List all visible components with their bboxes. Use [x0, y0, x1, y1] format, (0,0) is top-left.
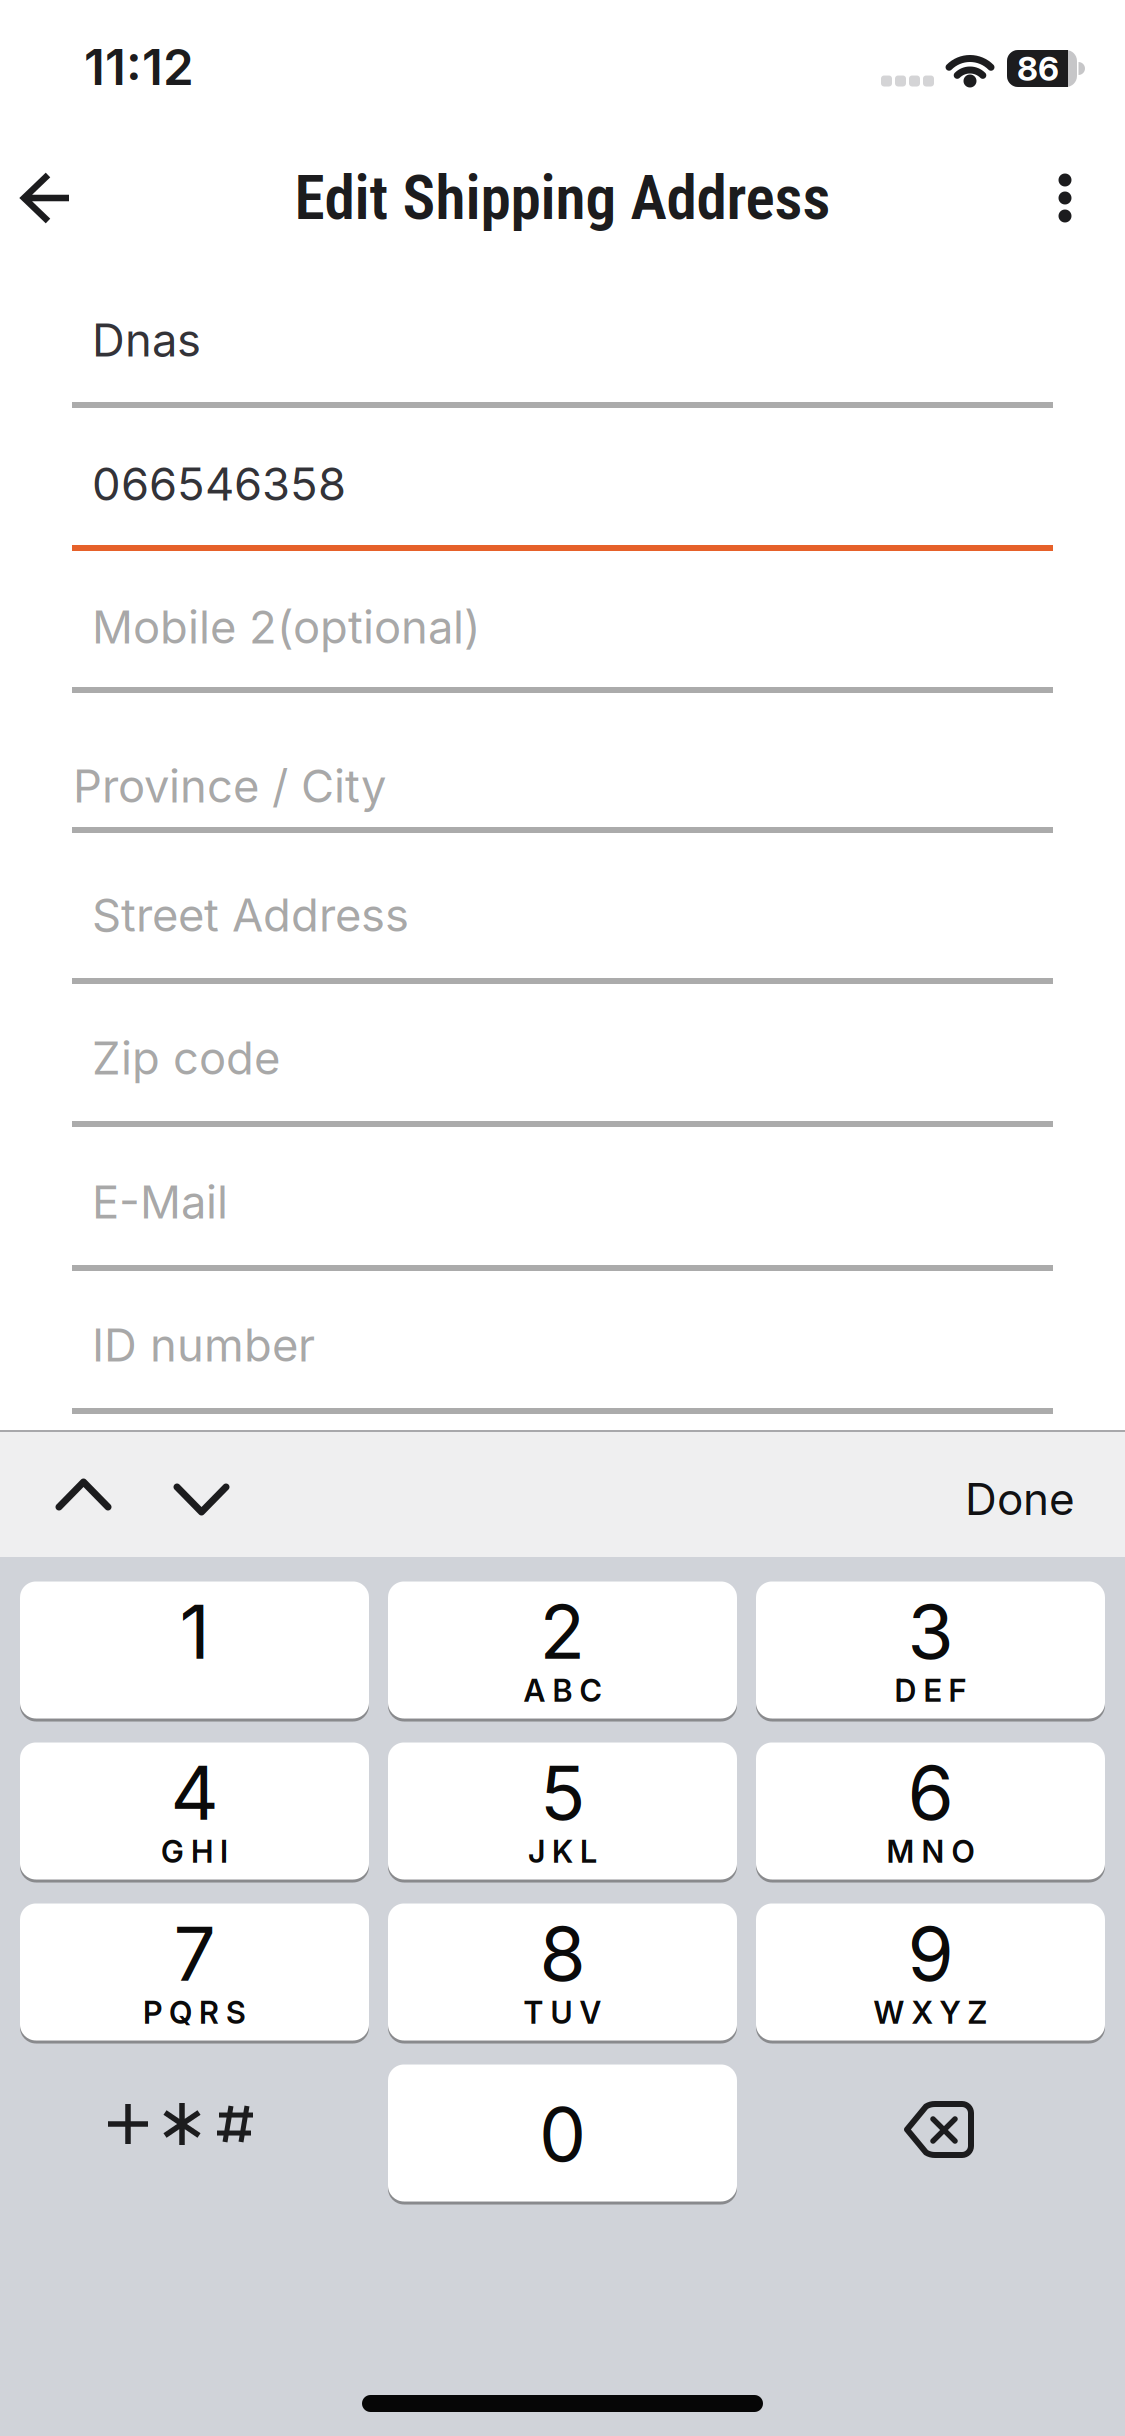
- button[interactable]: Back: [0, 143, 101, 253]
- staticText: ID number: [92, 1318, 315, 1372]
- staticText: ABC: [523, 1672, 601, 1709]
- button[interactable]: Delete: [756, 2063, 1105, 2200]
- button[interactable]: 2: [388, 1580, 737, 1720]
- staticText: MNO: [886, 1833, 974, 1870]
- button[interactable]: More options: [1010, 143, 1120, 253]
- staticText: Street Address: [92, 888, 409, 942]
- button[interactable]: Province / City: [72, 731, 1053, 841]
- staticText: 3: [907, 1586, 953, 1677]
- staticText: 1: [179, 1586, 209, 1677]
- button[interactable]: 3: [756, 1580, 1105, 1720]
- staticText: Edit Shipping Address: [294, 162, 830, 234]
- button[interactable]: Done: [775, 1449, 1075, 1549]
- staticText: WXYZ: [873, 1994, 987, 2031]
- staticText: 4: [170, 1747, 218, 1838]
- button[interactable]: 1: [20, 1580, 369, 1720]
- staticText: JKL: [528, 1833, 597, 1870]
- staticText: Done: [965, 1472, 1075, 1526]
- button[interactable]: 066546358: [72, 429, 1053, 551]
- staticText: 11:12: [84, 37, 194, 97]
- staticText: GHI: [161, 1833, 228, 1870]
- button[interactable]: Next field: [155, 1461, 248, 1541]
- staticText: 8: [539, 1908, 585, 1999]
- staticText: 6: [907, 1747, 953, 1838]
- staticText: 9: [907, 1908, 953, 1999]
- button[interactable]: 0: [388, 2063, 737, 2203]
- button[interactable]: 6: [756, 1741, 1105, 1881]
- button[interactable]: E-Mail: [72, 1147, 1053, 1271]
- staticText: Mobile 2(optional): [92, 600, 481, 654]
- button[interactable]: Previous field: [37, 1461, 130, 1541]
- staticText: 0: [539, 2089, 586, 2179]
- staticText: 7: [173, 1908, 215, 1999]
- button[interactable]: 7: [20, 1902, 369, 2042]
- staticText: Zip code: [92, 1031, 280, 1085]
- button[interactable]: 4: [20, 1741, 369, 1881]
- button[interactable]: Street Address: [72, 860, 1053, 984]
- button[interactable]: ID number: [72, 1290, 1053, 1414]
- button[interactable]: 5: [388, 1741, 737, 1881]
- staticText: 86: [1017, 48, 1059, 89]
- button[interactable]: 8: [388, 1902, 737, 2042]
- button[interactable]: Zip code: [72, 1003, 1053, 1127]
- staticText: TUV: [523, 1994, 601, 2031]
- button[interactable]: Mobile 2(optional): [72, 572, 1053, 693]
- button[interactable]: Dnas: [72, 285, 1053, 408]
- staticText: 2: [539, 1586, 585, 1677]
- staticText: 5: [540, 1747, 585, 1838]
- button[interactable]: 9: [756, 1902, 1105, 2042]
- staticText: Province / City: [73, 759, 386, 813]
- staticText: PQRS: [143, 1994, 246, 2031]
- button[interactable]: Symbols: [20, 2063, 369, 2200]
- staticText: 066546358: [92, 457, 346, 511]
- staticText: Dnas: [92, 313, 201, 367]
- staticText: E-Mail: [92, 1175, 228, 1229]
- staticText: DEF: [894, 1672, 966, 1709]
